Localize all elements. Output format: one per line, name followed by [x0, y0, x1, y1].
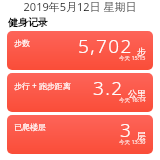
staticText: 步行 + 跑步距离: [14, 80, 71, 91]
staticText: 2019年5月12日 星期日: [0, 0, 160, 14]
button[interactable]: 已爬楼层: [7, 115, 153, 154]
staticText: 今天 13:30: [119, 138, 146, 146]
button[interactable]: 步行 + 跑步距离: [7, 73, 153, 112]
staticText: 公里: [128, 88, 146, 99]
staticText: 今天 15:15: [119, 54, 146, 62]
staticText: 已爬楼层: [14, 122, 46, 132]
button[interactable]: 步数: [7, 31, 153, 70]
staticText: 今天 16:14: [119, 96, 146, 104]
staticText: 3.2: [93, 75, 124, 101]
staticText: 3: [120, 117, 133, 143]
staticText: 5,702: [78, 33, 133, 59]
staticText: 步: [137, 46, 146, 57]
staticText: 健身记录: [8, 16, 48, 29]
staticText: 层: [137, 130, 146, 141]
staticText: 步数: [14, 38, 30, 48]
